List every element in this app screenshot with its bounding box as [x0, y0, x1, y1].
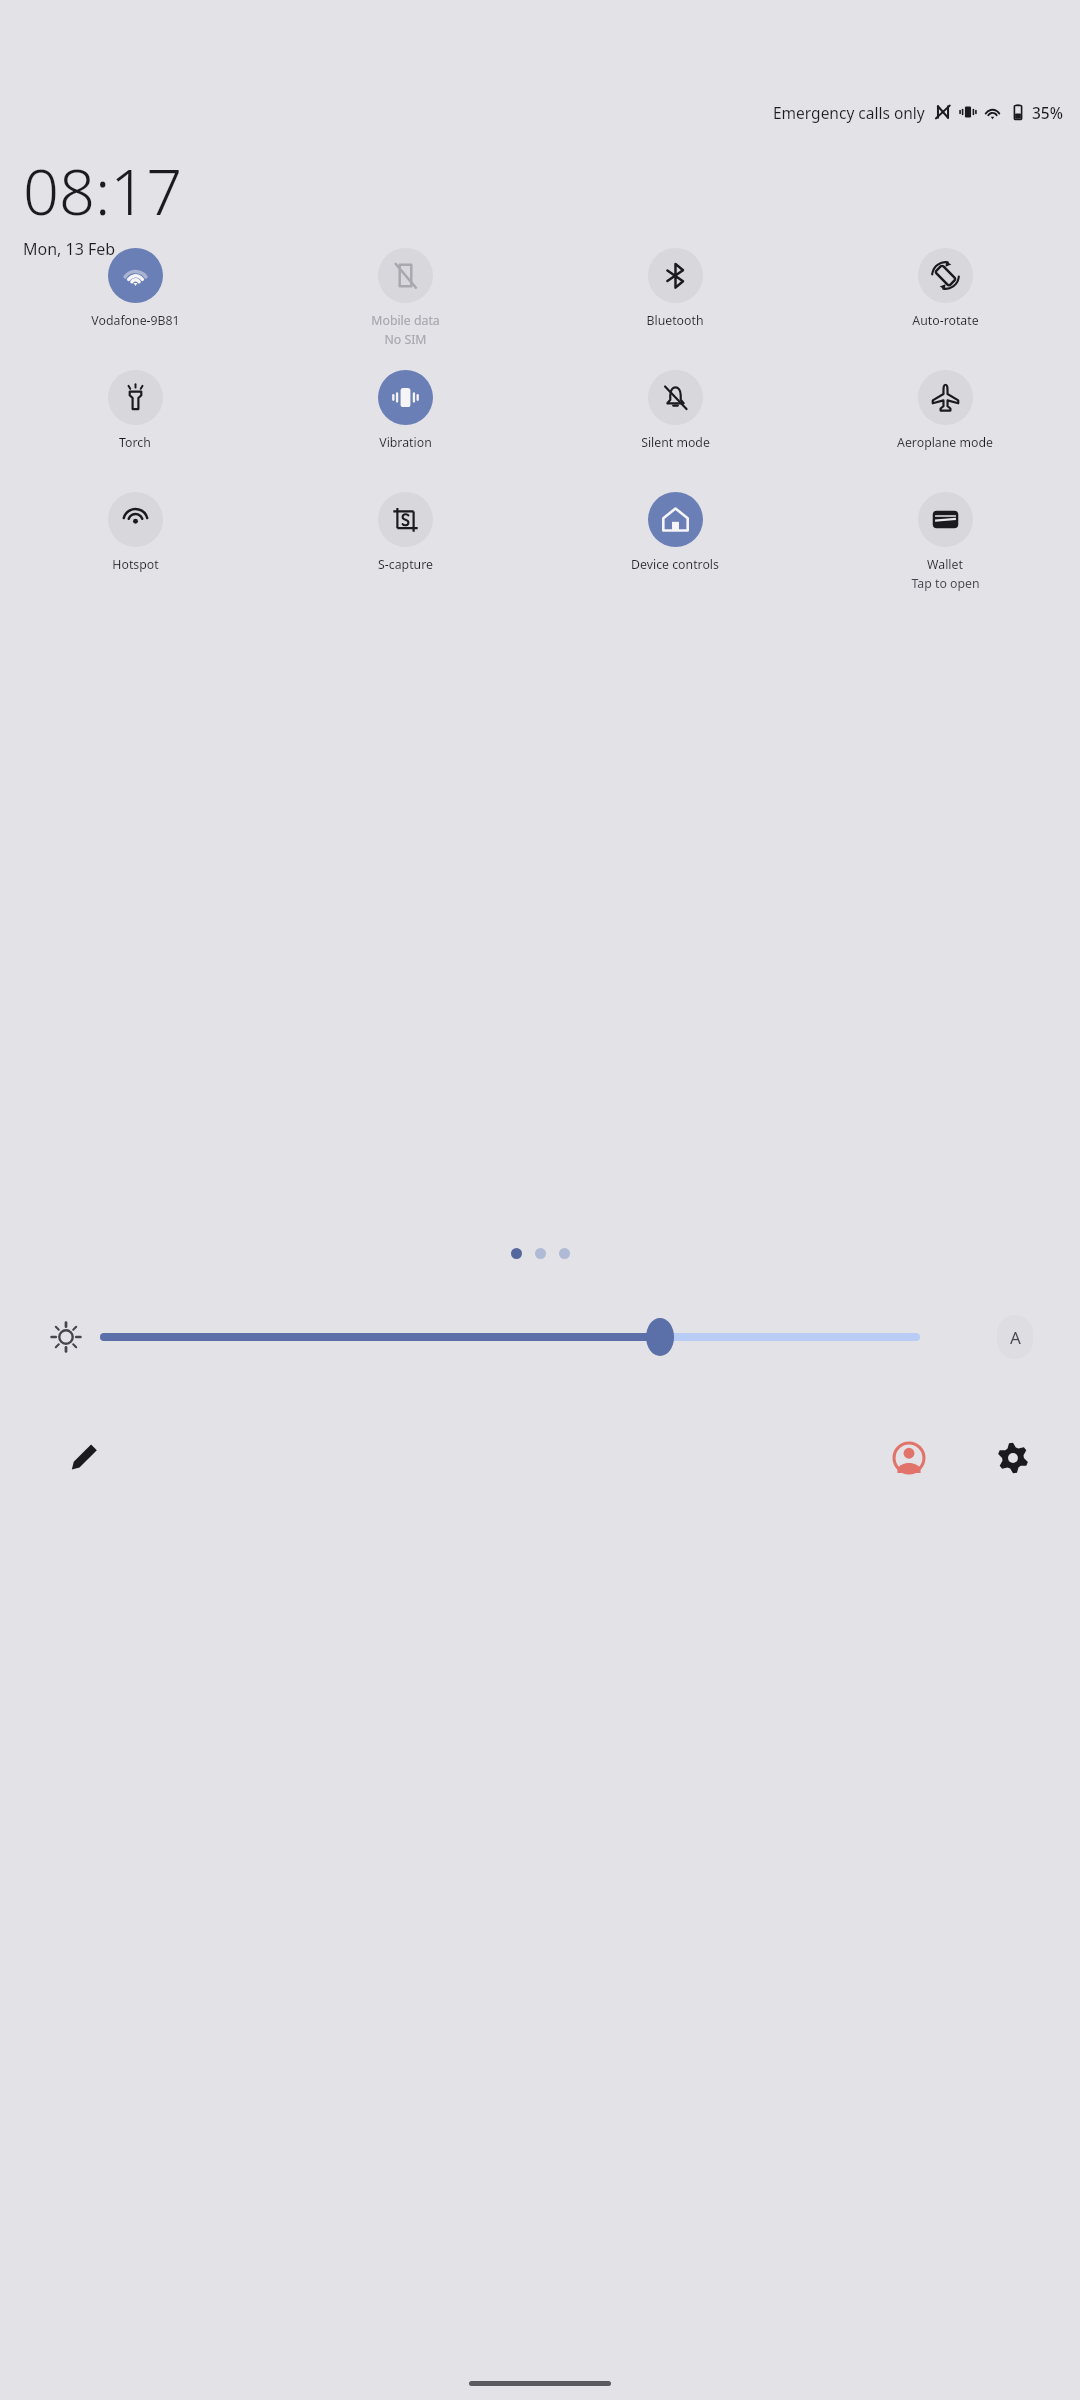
- staticText: Silent mode: [641, 434, 710, 451]
- staticText: Bluetooth: [646, 312, 704, 329]
- other: Brightness: [50, 1321, 82, 1353]
- button[interactable]: S-capture: [270, 490, 540, 612]
- button[interactable]: Mobile data: [270, 246, 540, 368]
- staticText: 08:17: [23, 148, 183, 234]
- staticText: Device controls: [631, 556, 719, 573]
- staticText: Hotspot: [112, 556, 159, 573]
- button[interactable]: Bluetooth: [540, 246, 810, 368]
- staticText: Vibration: [379, 434, 432, 451]
- staticText: Vodafone-9B81: [91, 312, 180, 329]
- button[interactable]: Settings: [990, 1435, 1036, 1481]
- staticText: Torch: [119, 434, 151, 451]
- staticText: Emergency calls only: [773, 102, 925, 123]
- button[interactable]: User: [886, 1435, 932, 1481]
- button[interactable]: Wallet: [810, 490, 1080, 612]
- button[interactable]: Silent mode: [540, 368, 810, 490]
- button[interactable]: Torch: [0, 368, 270, 490]
- staticText: Wallet: [927, 556, 963, 573]
- button[interactable]: Auto-rotate: [810, 246, 1080, 368]
- staticText: 35%: [1032, 102, 1063, 123]
- button[interactable]: Vodafone-9B81: [0, 246, 270, 368]
- staticText: Auto-rotate: [912, 312, 979, 329]
- button[interactable]: Aeroplane mode: [810, 368, 1080, 490]
- staticText: No SIM: [384, 331, 427, 348]
- button[interactable]: Hotspot: [0, 490, 270, 612]
- button[interactable]: Vibration: [270, 368, 540, 490]
- staticText: S-capture: [378, 556, 433, 573]
- button[interactable]: Device controls: [540, 490, 810, 612]
- staticText: Mon, 13 Feb: [23, 238, 116, 260]
- button[interactable]: Edit: [62, 1436, 106, 1480]
- staticText: A: [1010, 1326, 1021, 1349]
- staticText: Mobile data: [371, 312, 440, 329]
- button[interactable]: [100, 1320, 920, 1354]
- staticText: Tap to open: [911, 575, 980, 592]
- staticText: Aeroplane mode: [897, 434, 993, 451]
- button[interactable]: Auto brightness: [997, 1315, 1033, 1359]
